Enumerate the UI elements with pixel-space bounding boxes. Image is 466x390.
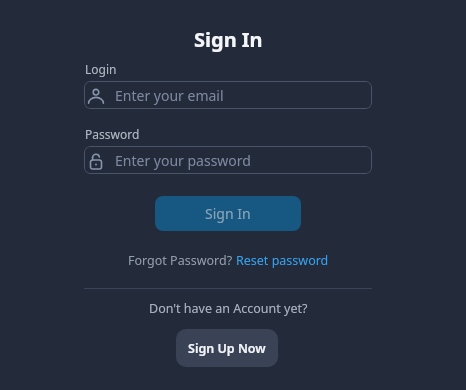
staticText: Forgot Password? (128, 252, 236, 269)
button[interactable]: Enter your email (84, 81, 372, 109)
staticText: Enter your email (115, 86, 224, 105)
staticText: Enter your password (115, 151, 251, 170)
button[interactable]: Reset password (236, 252, 329, 269)
button[interactable]: Enter your password (84, 146, 372, 174)
staticText: Don't have an Account yet? (149, 300, 308, 317)
staticText: Login (85, 61, 117, 77)
button[interactable]: Sign In (155, 196, 301, 231)
button[interactable]: Sign Up Now (176, 329, 278, 367)
staticText: Sign In (205, 204, 251, 223)
staticText: Password (85, 126, 140, 142)
staticText: Sign In (194, 26, 263, 53)
staticText: Sign Up Now (188, 340, 266, 357)
